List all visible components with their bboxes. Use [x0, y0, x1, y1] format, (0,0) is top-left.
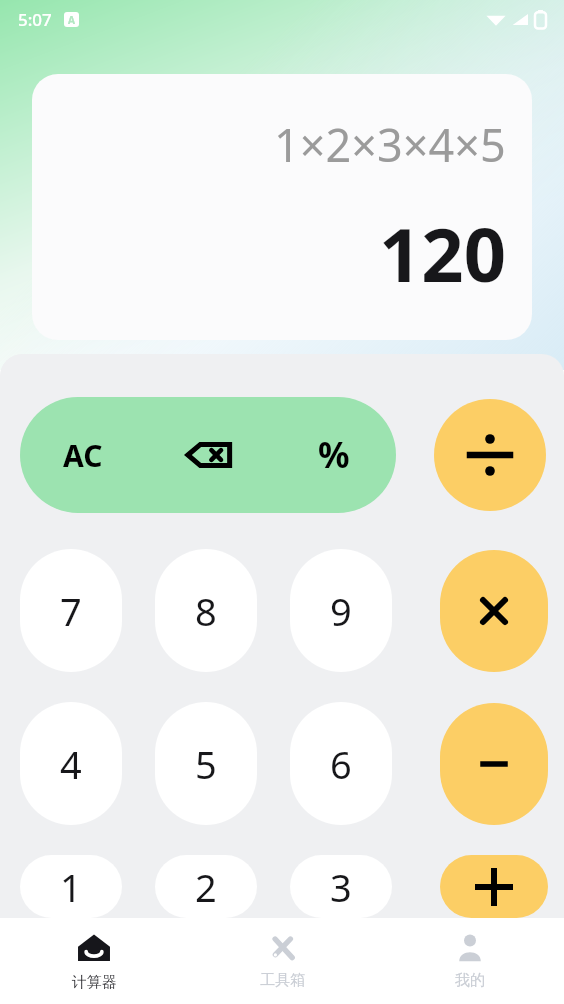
button[interactable]: 7 — [20, 549, 122, 672]
button[interactable]: 我的 — [376, 918, 564, 1004]
staticText: 计算器 — [72, 973, 117, 992]
button[interactable]: 1×2×3×4×5 — [32, 74, 532, 340]
staticText: 1 — [60, 861, 82, 913]
staticText: 工具箱 — [260, 971, 305, 990]
staticText: 120 — [379, 203, 506, 304]
staticText: 8 — [195, 585, 217, 637]
button[interactable]: 8 — [155, 549, 257, 672]
button[interactable]: AC — [20, 397, 146, 513]
button[interactable]: 计算器 — [0, 918, 188, 1004]
button[interactable]: Multiply — [440, 550, 548, 672]
staticText: 5 — [195, 738, 217, 790]
staticText: % — [318, 431, 350, 479]
button[interactable]: 4 — [20, 702, 122, 825]
button[interactable]: Backspace — [146, 397, 271, 513]
button[interactable]: Minus — [440, 703, 548, 825]
staticText: 7 — [60, 585, 82, 637]
button[interactable]: Divide — [434, 399, 546, 511]
staticText: 1×2×3×4×5 — [274, 114, 506, 175]
staticText: 我的 — [455, 971, 485, 990]
staticText: 3 — [330, 861, 352, 913]
button[interactable]: 6 — [290, 702, 392, 825]
button[interactable]: 3 — [290, 855, 392, 918]
button[interactable]: 9 — [290, 549, 392, 672]
staticText: 5:07 — [18, 8, 52, 31]
staticText: 9 — [330, 585, 352, 637]
staticText: AC — [63, 435, 103, 476]
staticText: 2 — [195, 861, 217, 913]
button[interactable]: Plus — [440, 855, 548, 918]
staticText: A — [68, 13, 75, 27]
button[interactable]: 工具箱 — [188, 918, 376, 1004]
staticText: 4 — [60, 738, 82, 790]
staticText: 6 — [330, 738, 352, 790]
button[interactable]: % — [271, 397, 396, 513]
button[interactable]: 5 — [155, 702, 257, 825]
button[interactable]: 2 — [155, 855, 257, 918]
button[interactable]: 1 — [20, 855, 122, 918]
